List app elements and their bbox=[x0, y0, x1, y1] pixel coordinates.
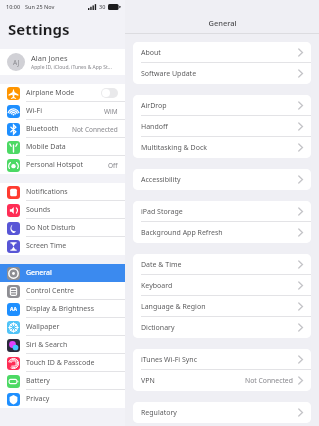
staticText: iPad Storage bbox=[141, 207, 297, 217]
staticText: Do Not Disturb bbox=[26, 223, 118, 233]
staticText: iTunes Wi-Fi Sync bbox=[141, 355, 297, 365]
staticText: Software Update bbox=[141, 69, 297, 79]
staticText: Display & Brightness bbox=[26, 304, 118, 314]
staticText: 30 bbox=[99, 3, 106, 10]
button[interactable]: General bbox=[0, 264, 125, 282]
button[interactable]: Dictionary bbox=[133, 317, 311, 338]
staticText: Off bbox=[108, 161, 118, 170]
staticText: Date & Time bbox=[141, 260, 297, 270]
button[interactable]: Wi-Fi bbox=[0, 102, 125, 120]
staticText: Not Connected bbox=[245, 376, 293, 385]
button[interactable]: Sounds bbox=[0, 201, 125, 219]
button[interactable]: Mobile Data bbox=[0, 138, 125, 156]
staticText: Control Centre bbox=[26, 286, 118, 296]
button[interactable]: Personal Hotspot bbox=[0, 156, 125, 174]
button[interactable]: Language & Region bbox=[133, 296, 311, 317]
button[interactable]: Multitasking & Dock bbox=[133, 137, 311, 158]
staticText: Language & Region bbox=[141, 302, 297, 312]
button[interactable]: iPad Storage bbox=[133, 201, 311, 222]
staticText: Sun 25 Nov bbox=[25, 3, 55, 10]
button[interactable]: Regulatory bbox=[133, 402, 311, 423]
staticText: Notifications bbox=[26, 187, 118, 197]
button[interactable]: Do Not Disturb bbox=[0, 219, 125, 237]
staticText: Touch ID & Passcode bbox=[26, 358, 118, 368]
staticText: General bbox=[208, 18, 237, 28]
button[interactable]: Background App Refresh bbox=[133, 222, 311, 243]
staticText: Dictionary bbox=[141, 323, 297, 333]
staticText: 10:00 bbox=[6, 3, 21, 10]
staticText: Screen Time bbox=[26, 241, 118, 251]
button[interactable]: Privacy bbox=[0, 390, 125, 408]
button[interactable]: Touch ID & Passcode bbox=[0, 354, 125, 372]
button[interactable]: Siri & Search bbox=[0, 336, 125, 354]
button[interactable]: Software Update bbox=[133, 63, 311, 84]
staticText: Privacy bbox=[26, 394, 118, 404]
button[interactable]: Keyboard bbox=[133, 275, 311, 296]
staticText: Handoff bbox=[141, 122, 297, 132]
button[interactable]: Control Centre bbox=[0, 282, 125, 300]
staticText: AJ bbox=[13, 58, 20, 67]
button[interactable]: Bluetooth bbox=[0, 120, 125, 138]
staticText: Multitasking & Dock bbox=[141, 143, 297, 153]
staticText: Sounds bbox=[26, 205, 118, 215]
staticText: Regulatory bbox=[141, 408, 297, 418]
staticText: Personal Hotspot bbox=[26, 160, 108, 170]
staticText: WiM bbox=[104, 107, 118, 116]
button[interactable]: Screen Time bbox=[0, 237, 125, 255]
button[interactable]: iTunes Wi-Fi Sync bbox=[133, 349, 311, 370]
staticText: Background App Refresh bbox=[141, 228, 297, 238]
staticText: AirDrop bbox=[141, 101, 297, 111]
button[interactable]: About bbox=[133, 42, 311, 63]
button[interactable]: Airplane Mode bbox=[0, 84, 125, 102]
button[interactable]: Date & Time bbox=[133, 254, 311, 275]
staticText: Not Connected bbox=[72, 125, 118, 134]
staticText: Keyboard bbox=[141, 281, 297, 291]
staticText: Accessibility bbox=[141, 175, 297, 185]
button[interactable]: AA bbox=[0, 300, 125, 318]
staticText: Siri & Search bbox=[26, 340, 118, 350]
staticText: AA bbox=[10, 306, 17, 313]
staticText: Mobile Data bbox=[26, 142, 118, 152]
button[interactable]: VPN bbox=[133, 370, 311, 391]
staticText: Airplane Mode bbox=[26, 88, 101, 98]
button[interactable]: Handoff bbox=[133, 116, 311, 137]
button[interactable]: Wallpaper bbox=[0, 318, 125, 336]
button[interactable]: AJ bbox=[0, 49, 125, 75]
staticText: Alan Jones bbox=[31, 53, 68, 63]
button[interactable]: Accessibility bbox=[133, 169, 311, 190]
button[interactable]: Notifications bbox=[0, 183, 125, 201]
staticText: Settings bbox=[8, 19, 70, 39]
button[interactable]: Battery bbox=[0, 372, 125, 390]
staticText: Wallpaper bbox=[26, 322, 118, 332]
staticText: General bbox=[26, 268, 118, 278]
staticText: Apple ID, iCloud, iTunes & App St... bbox=[31, 64, 112, 71]
staticText: Battery bbox=[26, 376, 118, 386]
staticText: VPN bbox=[141, 376, 245, 386]
staticText: Wi-Fi bbox=[26, 106, 104, 116]
staticText: About bbox=[141, 48, 297, 58]
staticText: Bluetooth bbox=[26, 124, 72, 134]
button[interactable]: AirDrop bbox=[133, 95, 311, 116]
